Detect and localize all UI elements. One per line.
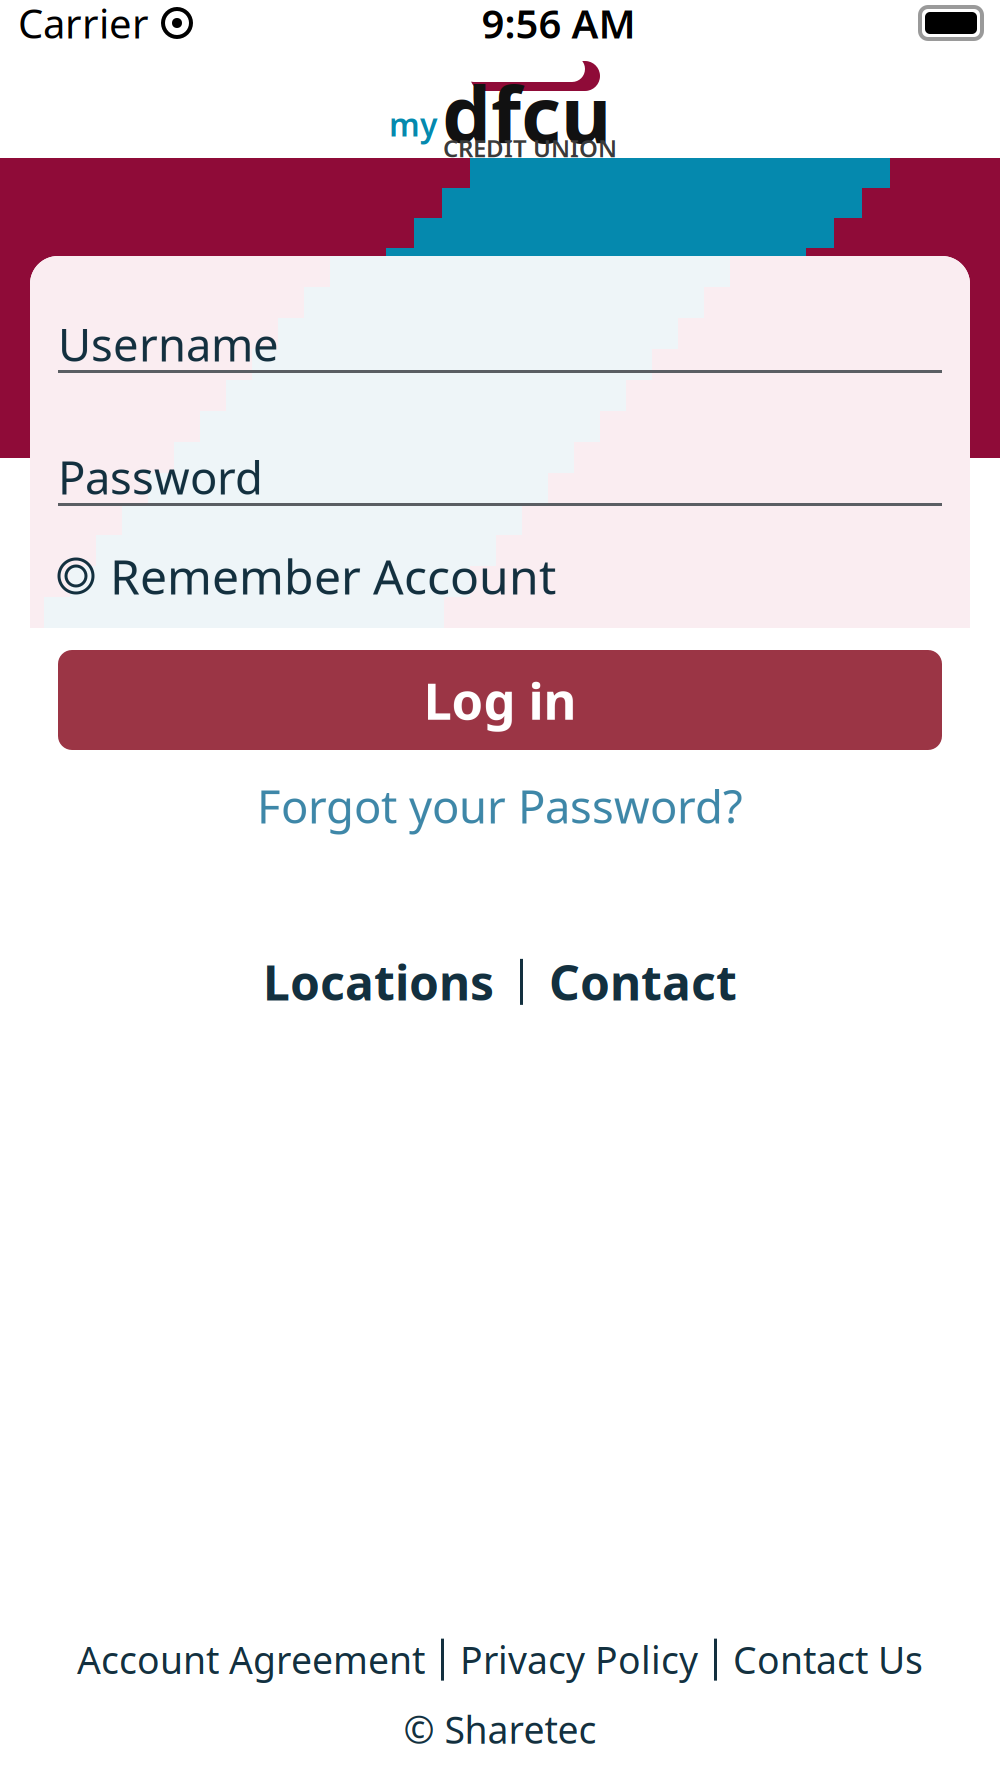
staticText: Locations xyxy=(263,950,494,1014)
staticText: Carrier xyxy=(18,0,149,49)
staticText: dfcu xyxy=(442,62,611,164)
button[interactable]: Contact xyxy=(523,938,763,1026)
button[interactable]: Log in xyxy=(58,650,942,750)
staticText: Privacy Policy xyxy=(460,1635,698,1684)
staticText: Remember Account xyxy=(110,544,556,608)
staticText: my xyxy=(389,103,438,145)
button[interactable]: Privacy Policy xyxy=(444,1629,714,1690)
button[interactable]: Account Agreement xyxy=(61,1629,441,1690)
staticText: Account Agreement xyxy=(77,1635,425,1684)
staticText: CREDIT UNION xyxy=(443,132,617,164)
staticText: Contact Us xyxy=(733,1635,923,1684)
button[interactable]: Forgot your Password? xyxy=(58,774,942,838)
button[interactable]: Remember Account xyxy=(58,548,942,604)
staticText: Username xyxy=(58,314,279,374)
button[interactable]: Contact Us xyxy=(717,1629,939,1690)
staticText: Forgot your Password? xyxy=(257,776,743,836)
button[interactable]: Locations xyxy=(237,938,520,1026)
staticText: Password xyxy=(58,447,263,507)
staticText: 9:56 AM xyxy=(481,0,635,49)
staticText: Log in xyxy=(423,666,576,734)
staticText: Contact xyxy=(549,950,737,1014)
staticText: © Sharetec xyxy=(403,1704,596,1754)
